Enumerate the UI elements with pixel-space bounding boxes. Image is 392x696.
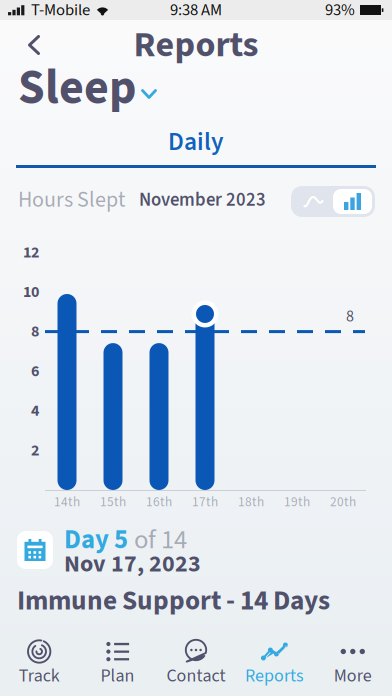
staticText: Sleep	[18, 54, 137, 122]
staticText: 20th	[330, 492, 356, 511]
staticText: Reports	[133, 19, 258, 71]
staticText: More	[334, 663, 372, 689]
staticText: of 14	[134, 521, 187, 559]
button[interactable]: Track	[0, 630, 78, 694]
button[interactable]: Reports	[235, 630, 314, 694]
staticText: 18th	[238, 492, 264, 511]
staticText: T-Mobile	[31, 0, 90, 22]
staticText: 12	[23, 241, 39, 264]
staticText: 6	[31, 360, 39, 383]
staticText: Plan	[101, 663, 135, 689]
staticText: 15th	[100, 492, 126, 511]
button[interactable]: More	[314, 630, 392, 694]
staticText: 2	[31, 439, 39, 462]
staticText: 8	[31, 320, 39, 343]
staticText: Hours Slept	[18, 184, 125, 216]
staticText: Daily	[168, 124, 224, 160]
staticText: Contact	[166, 663, 225, 689]
staticText: 19th	[284, 492, 310, 511]
staticText: Reports	[245, 663, 304, 689]
staticText: 17th	[192, 492, 218, 511]
staticText: 4	[31, 399, 39, 422]
staticText: 16th	[146, 492, 172, 511]
staticText: 14th	[54, 492, 80, 511]
button[interactable]: Line chart	[294, 189, 333, 214]
staticText: 8	[346, 305, 354, 328]
button[interactable]: Contact	[157, 630, 235, 694]
staticText: 9:38 AM	[170, 0, 222, 22]
button[interactable]: Plan	[78, 630, 157, 694]
button[interactable]: Change metric	[132, 78, 166, 110]
button[interactable]: Bar chart	[333, 189, 372, 214]
staticText: Day 5	[64, 521, 128, 559]
staticText: Immune Support - 14 Days	[17, 581, 330, 620]
staticText: November 2023	[139, 187, 266, 213]
staticText: 93%	[325, 0, 355, 22]
staticText: 10	[23, 281, 39, 303]
staticText: Track	[19, 663, 60, 689]
button[interactable]: Back	[11, 23, 57, 67]
button[interactable]: Daily	[16, 124, 376, 160]
staticText: Nov 17, 2023	[64, 547, 201, 581]
